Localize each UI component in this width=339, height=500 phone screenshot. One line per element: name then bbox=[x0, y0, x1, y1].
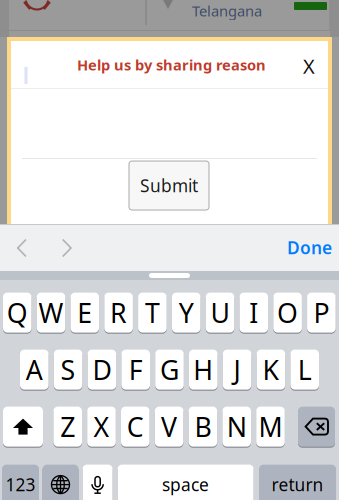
button[interactable]: Y bbox=[172, 292, 200, 333]
button[interactable]: M bbox=[256, 406, 285, 447]
staticText: A bbox=[26, 352, 43, 387]
button[interactable]: T bbox=[138, 292, 167, 333]
button[interactable]: Next keyboard bbox=[42, 464, 78, 500]
staticText: N bbox=[227, 409, 247, 444]
staticText: X bbox=[303, 53, 315, 79]
button[interactable]: Delete bbox=[298, 406, 335, 447]
staticText: U bbox=[210, 295, 229, 330]
button[interactable]: P bbox=[307, 292, 336, 333]
button[interactable]: V bbox=[155, 406, 183, 447]
staticText: C bbox=[127, 409, 144, 444]
button[interactable]: H bbox=[189, 349, 218, 390]
button[interactable]: 123 bbox=[2, 464, 39, 500]
button[interactable]: Next field bbox=[50, 228, 84, 268]
button[interactable]: Dictate bbox=[83, 464, 113, 500]
staticText: W bbox=[38, 295, 63, 330]
button[interactable]: A bbox=[20, 349, 49, 390]
button[interactable]: S bbox=[54, 349, 82, 390]
button[interactable]: Previous field bbox=[5, 228, 39, 268]
button[interactable]: O bbox=[273, 292, 302, 333]
staticText: I bbox=[249, 295, 258, 330]
staticText: J bbox=[234, 352, 241, 387]
button[interactable]: B bbox=[189, 406, 217, 447]
staticText: L bbox=[298, 352, 312, 387]
staticText: D bbox=[92, 352, 111, 387]
button[interactable]: W bbox=[37, 292, 65, 333]
staticText: Telangana bbox=[192, 1, 262, 20]
staticText: Y bbox=[179, 295, 194, 330]
staticText: Z bbox=[60, 409, 75, 444]
button[interactable]: K bbox=[257, 349, 285, 390]
button[interactable]: C bbox=[121, 406, 150, 447]
button[interactable]: R bbox=[104, 292, 133, 333]
button[interactable]: L bbox=[290, 349, 319, 390]
staticText: E bbox=[77, 295, 92, 330]
staticText: S bbox=[61, 352, 76, 387]
button[interactable]: Q bbox=[3, 292, 31, 333]
staticText: R bbox=[110, 295, 127, 330]
staticText: H bbox=[193, 352, 213, 387]
button[interactable]: J bbox=[223, 349, 251, 390]
staticText: 123 bbox=[5, 473, 35, 496]
button[interactable]: G bbox=[155, 349, 184, 390]
button[interactable]: Done bbox=[270, 227, 332, 267]
button[interactable]: X bbox=[87, 406, 116, 447]
button[interactable]: I bbox=[239, 292, 268, 333]
button[interactable]: Close bbox=[296, 53, 322, 79]
staticText: O bbox=[277, 295, 298, 330]
button[interactable]: Submit bbox=[129, 161, 209, 210]
button[interactable]: E bbox=[70, 292, 99, 333]
staticText: V bbox=[161, 409, 177, 444]
button[interactable]: D bbox=[88, 349, 116, 390]
button[interactable]: Z bbox=[53, 406, 82, 447]
staticText: P bbox=[313, 295, 329, 330]
button[interactable]: space bbox=[118, 464, 254, 500]
button[interactable]: F bbox=[121, 349, 150, 390]
staticText: K bbox=[262, 352, 279, 387]
staticText: T bbox=[145, 295, 160, 330]
staticText: B bbox=[194, 409, 211, 444]
staticText: F bbox=[129, 352, 143, 387]
staticText: Q bbox=[7, 295, 28, 330]
staticText: Done bbox=[287, 236, 332, 259]
button[interactable]: U bbox=[206, 292, 234, 333]
staticText: return bbox=[271, 473, 323, 496]
staticText: Help us by sharing reason bbox=[77, 55, 266, 74]
staticText: space bbox=[162, 473, 209, 496]
staticText: X bbox=[93, 409, 109, 444]
button[interactable]: Shift bbox=[3, 406, 43, 447]
staticText: G bbox=[160, 352, 179, 387]
staticText: M bbox=[258, 409, 282, 444]
staticText: Submit bbox=[140, 174, 198, 197]
button[interactable]: N bbox=[222, 406, 251, 447]
button[interactable]: return bbox=[259, 464, 336, 500]
